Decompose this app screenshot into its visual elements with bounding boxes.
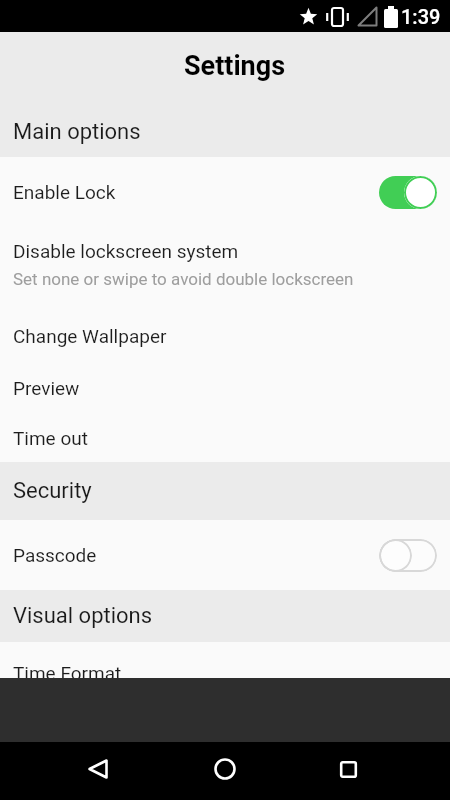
staticText: Set none or swipe to avoid double locksc…: [13, 269, 354, 289]
staticText: 1:39: [401, 5, 441, 28]
staticText: Passcode: [13, 544, 97, 566]
button[interactable]: Preview: [0, 362, 450, 414]
staticText: Disable lockscreen system: [13, 240, 239, 262]
staticText: Change Wallpaper: [13, 325, 167, 347]
staticText: Security: [13, 478, 92, 504]
staticText: Enable Lock: [13, 181, 116, 203]
button[interactable]: Disable lockscreen system: [0, 227, 450, 310]
button[interactable]: Time Format: [0, 642, 450, 678]
button[interactable]: Enable Lock: [0, 157, 450, 227]
button[interactable]: [340, 761, 357, 778]
button[interactable]: Passcode: [0, 520, 450, 590]
staticText: Main options: [13, 119, 141, 145]
button[interactable]: [88, 759, 108, 779]
staticText: Settings: [184, 50, 286, 82]
staticText: Visual options: [13, 603, 153, 629]
button[interactable]: Time out: [0, 414, 450, 462]
staticText: Time Format: [13, 662, 122, 678]
staticText: Time out: [13, 427, 88, 449]
staticText: Preview: [13, 377, 80, 399]
button[interactable]: [214, 758, 236, 780]
button[interactable]: Change Wallpaper: [0, 310, 450, 362]
